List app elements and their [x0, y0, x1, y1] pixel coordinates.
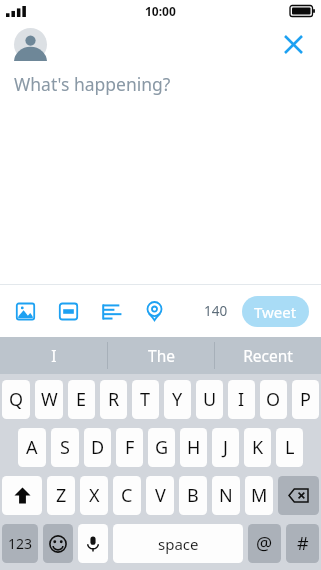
button[interactable]: D — [84, 428, 111, 467]
button[interactable]: Close — [276, 27, 310, 61]
button[interactable]: Z — [47, 476, 75, 515]
button[interactable]: # — [286, 524, 319, 563]
staticText: A — [26, 435, 38, 460]
staticText: 123 — [8, 534, 33, 553]
staticText: H — [187, 435, 201, 460]
button[interactable]: Voice input — [78, 524, 108, 563]
button[interactable]: Q — [2, 380, 30, 419]
staticText: F — [125, 435, 135, 460]
staticText: Q — [9, 387, 24, 412]
button[interactable]: E — [68, 380, 95, 419]
staticText: R — [108, 387, 120, 412]
button[interactable]: The — [108, 337, 214, 374]
staticText: 10:00 — [145, 3, 176, 19]
button[interactable]: space — [113, 524, 243, 563]
button[interactable]: Shift — [2, 476, 42, 515]
staticText: D — [91, 435, 105, 460]
button[interactable]: K — [244, 428, 271, 467]
staticText: C — [121, 483, 133, 508]
staticText: O — [266, 387, 281, 412]
button[interactable]: U — [196, 380, 223, 419]
staticText: I — [51, 345, 57, 366]
button[interactable]: Emoji — [43, 524, 73, 563]
button[interactable]: W — [35, 380, 63, 419]
staticText: X — [89, 483, 100, 508]
staticText: S — [60, 435, 70, 460]
button[interactable]: Add photo — [13, 299, 37, 323]
staticText: @ — [256, 531, 273, 556]
button[interactable]: S — [51, 428, 79, 467]
button[interactable]: X — [80, 476, 108, 515]
button[interactable]: G — [148, 428, 175, 467]
button[interactable]: @ — [248, 524, 281, 563]
button[interactable]: N — [212, 476, 240, 515]
button[interactable]: T — [132, 380, 159, 419]
staticText: B — [187, 483, 199, 508]
button[interactable]: Backspace — [278, 476, 319, 515]
button[interactable]: M — [245, 476, 273, 515]
button[interactable]: L — [276, 428, 303, 467]
staticText: What's happening? — [14, 72, 171, 96]
button[interactable]: I — [228, 380, 255, 419]
button[interactable]: 123 — [2, 524, 38, 563]
staticText: G — [155, 435, 169, 460]
staticText: space — [158, 534, 199, 554]
staticText: U — [203, 387, 217, 412]
button[interactable]: Tweet — [242, 296, 309, 327]
button[interactable]: I — [0, 337, 107, 374]
staticText: T — [140, 387, 151, 412]
staticText: J — [223, 435, 228, 460]
staticText: V — [155, 483, 166, 508]
staticText: Tweet — [254, 302, 297, 322]
button[interactable]: Recent — [215, 337, 321, 374]
button[interactable]: C — [113, 476, 141, 515]
button[interactable]: F — [116, 428, 143, 467]
button[interactable]: Y — [164, 380, 191, 419]
staticText: # — [297, 531, 309, 556]
staticText: The — [148, 345, 175, 366]
button[interactable]: R — [100, 380, 127, 419]
button[interactable]: V — [146, 476, 174, 515]
staticText: 140 — [204, 302, 228, 320]
button[interactable]: Add poll — [99, 299, 123, 323]
staticText: L — [285, 435, 295, 460]
staticText: P — [300, 387, 311, 412]
button[interactable]: H — [180, 428, 207, 467]
staticText: M — [251, 483, 268, 508]
staticText: E — [76, 387, 87, 412]
button[interactable]: O — [260, 380, 287, 419]
button[interactable]: A — [18, 428, 46, 467]
button[interactable]: Add location — [142, 299, 166, 323]
staticText: I — [238, 387, 245, 412]
staticText: Y — [172, 387, 183, 412]
button[interactable]: P — [292, 380, 319, 419]
button[interactable]: Add GIF — [56, 299, 80, 323]
staticText: N — [219, 483, 233, 508]
staticText: K — [252, 435, 264, 460]
button[interactable]: B — [179, 476, 207, 515]
staticText: W — [41, 387, 58, 412]
button[interactable]: J — [212, 428, 239, 467]
staticText: Recent — [243, 345, 293, 366]
staticText: Z — [56, 483, 67, 508]
